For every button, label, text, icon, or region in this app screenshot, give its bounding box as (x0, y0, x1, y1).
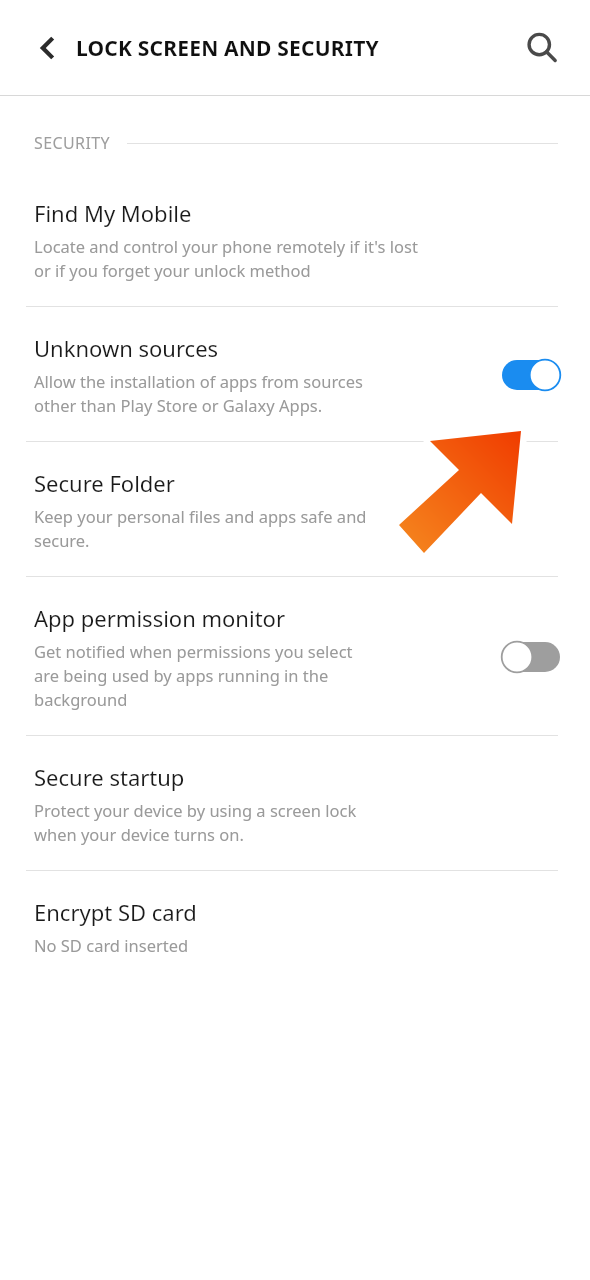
staticText: Secure Folder (34, 468, 175, 498)
button[interactable]: Search (518, 24, 566, 72)
staticText: Allow the installation of apps from sour… (34, 370, 363, 417)
button[interactable]: Encrypt SD card (0, 871, 590, 980)
staticText: Protect your device by using a screen lo… (34, 799, 357, 846)
staticText: Secure startup (34, 762, 185, 792)
button[interactable]: Toggle off (502, 640, 560, 674)
button[interactable]: Toggle on (502, 358, 560, 392)
button[interactable]: Find My Mobile (0, 172, 590, 306)
button[interactable]: Secure Folder (0, 442, 590, 576)
staticText: No SD card inserted (34, 934, 189, 956)
staticText: Locate and control your phone remotely i… (34, 235, 418, 282)
button[interactable]: Unknown sources (0, 307, 590, 441)
staticText: LOCK SCREEN AND SECURITY (76, 34, 379, 63)
staticText: Unknown sources (34, 333, 219, 363)
button[interactable]: Back (24, 24, 72, 72)
staticText: App permission monitor (34, 603, 285, 633)
staticText: Keep your personal files and apps safe a… (34, 505, 367, 552)
button[interactable]: Secure startup (0, 736, 590, 870)
staticText: Encrypt SD card (34, 897, 197, 927)
staticText: Get notified when permissions you select… (34, 640, 353, 711)
staticText: Find My Mobile (34, 198, 192, 228)
staticText: SECURITY (34, 132, 111, 154)
button[interactable]: App permission monitor (0, 577, 590, 735)
